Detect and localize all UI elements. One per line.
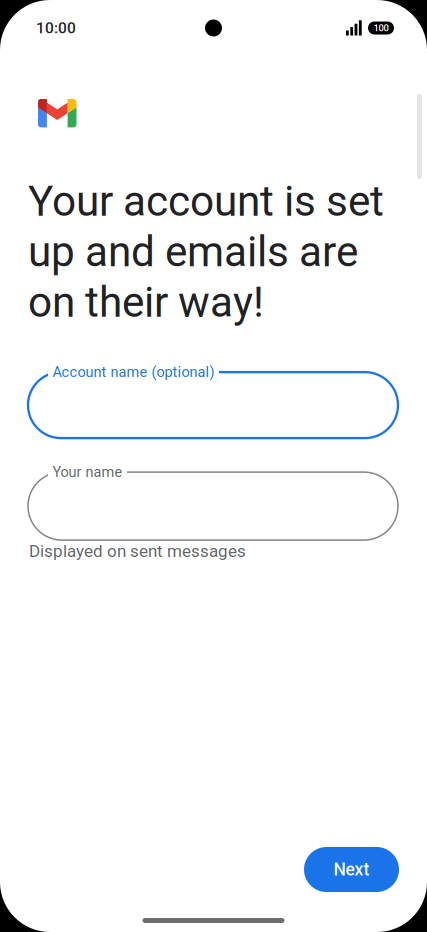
staticText: Your name: [52, 464, 122, 481]
button[interactable]: Account name (optional): [28, 372, 398, 438]
button[interactable]: Next: [304, 847, 399, 892]
staticText: Account name (optional): [52, 364, 214, 381]
staticText: Next: [333, 859, 369, 880]
button[interactable]: Your name: [28, 472, 398, 540]
staticText: 10:00: [36, 19, 76, 37]
staticText: 100: [373, 22, 388, 33]
staticText: Displayed on sent messages: [29, 541, 246, 561]
staticText: Your account is set up and emails are on…: [28, 176, 384, 327]
